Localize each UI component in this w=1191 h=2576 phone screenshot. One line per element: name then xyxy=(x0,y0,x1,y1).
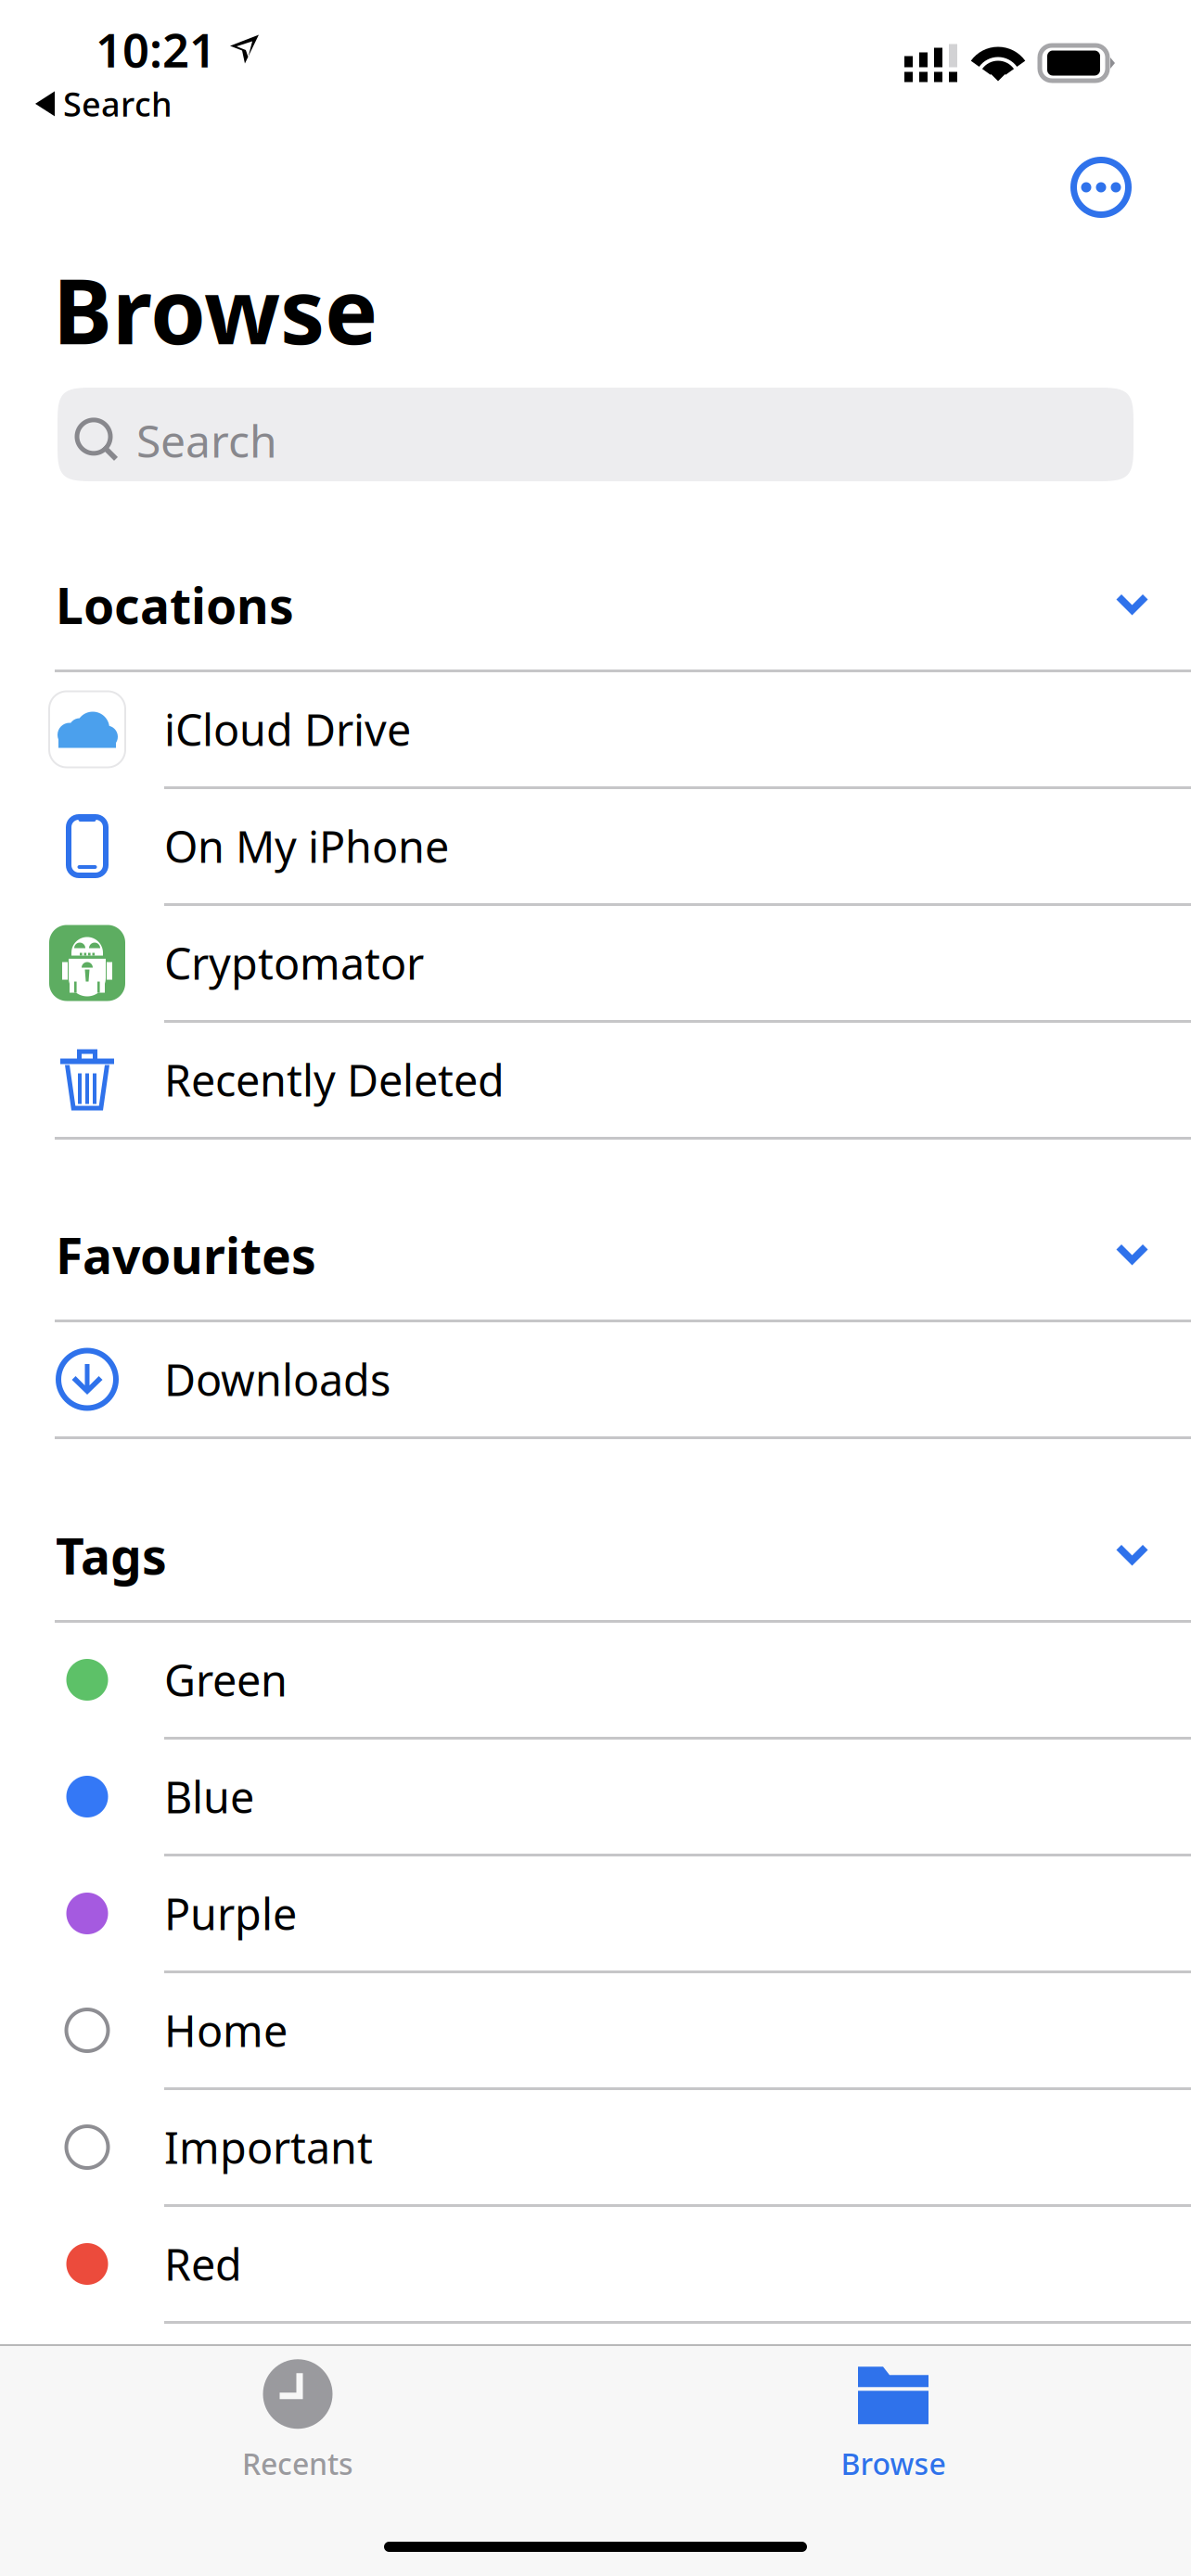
staticText: Red xyxy=(164,2235,242,2293)
button[interactable]: Recently Deleted xyxy=(0,1023,1191,1137)
button[interactable]: Important xyxy=(0,2090,1191,2204)
staticText: Search xyxy=(136,411,277,470)
button[interactable]: Blue xyxy=(0,1740,1191,1854)
button[interactable]: Cryptomator xyxy=(0,906,1191,1020)
button[interactable]: Collapse Tags xyxy=(1087,1526,1177,1616)
button[interactable]: Collapse Locations xyxy=(1087,576,1177,666)
staticText: Blue xyxy=(164,1768,254,1825)
button[interactable]: Downloads xyxy=(0,1322,1191,1436)
staticText: Important xyxy=(164,2118,373,2176)
button[interactable]: Green xyxy=(0,1623,1191,1737)
staticText: Downloads xyxy=(164,1351,391,1408)
staticText: Search xyxy=(63,82,173,126)
staticText: Purple xyxy=(164,1885,297,1942)
button[interactable]: Home xyxy=(0,1973,1191,2087)
staticText: Green xyxy=(164,1651,288,1709)
button[interactable]: Search xyxy=(0,82,595,120)
staticText: Recently Deleted xyxy=(164,1051,505,1109)
button[interactable]: Browse xyxy=(595,2346,1191,2487)
button[interactable]: On My iPhone xyxy=(0,789,1191,903)
staticText: Recents xyxy=(242,2444,353,2483)
button[interactable]: iCloud Drive xyxy=(0,672,1191,786)
staticText: Home xyxy=(164,2002,288,2059)
staticText: Cryptomator xyxy=(164,934,424,992)
staticText: Browse xyxy=(53,251,378,369)
button[interactable]: Red xyxy=(0,2207,1191,2321)
button[interactable]: Purple xyxy=(0,1856,1191,1970)
staticText: Browse xyxy=(841,2444,946,2483)
button[interactable]: Search xyxy=(58,388,1133,481)
staticText: Tags xyxy=(56,1523,167,1588)
button[interactable]: Recents xyxy=(0,2346,595,2487)
button[interactable]: Collapse Favourites xyxy=(1087,1226,1177,1316)
staticText: iCloud Drive xyxy=(164,701,411,758)
staticText: On My iPhone xyxy=(164,817,449,875)
staticText: 10:21 xyxy=(96,18,216,80)
staticText: Favourites xyxy=(56,1222,316,1288)
staticText: Locations xyxy=(56,572,294,638)
button[interactable]: More xyxy=(1057,143,1146,232)
